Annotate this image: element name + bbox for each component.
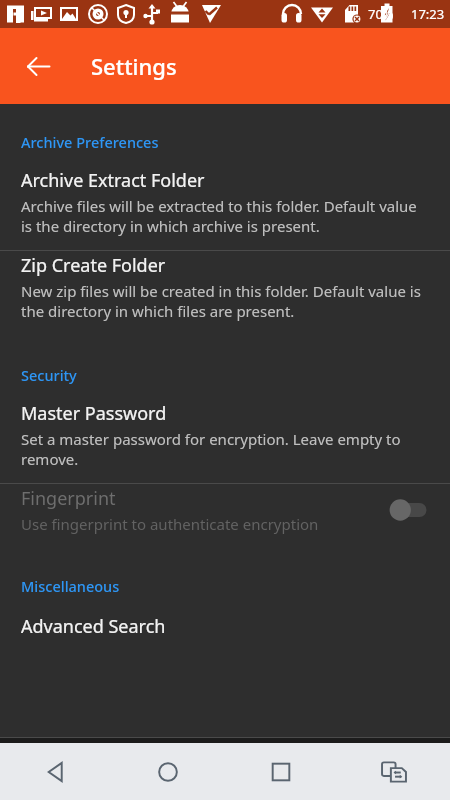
button[interactable]: Rotate screen bbox=[337, 743, 450, 800]
button[interactable]: Fingerprint toggle bbox=[386, 496, 432, 524]
staticText: Archive files will be extracted to this … bbox=[21, 196, 426, 236]
staticText: Settings bbox=[91, 51, 177, 81]
staticText: Security bbox=[21, 365, 77, 385]
button[interactable]: Advanced Search bbox=[0, 612, 450, 653]
staticText: 17:23 bbox=[411, 5, 445, 23]
button[interactable]: Recents bbox=[224, 743, 337, 800]
staticText: Zip Create Folder bbox=[21, 253, 166, 278]
button[interactable]: Master Password bbox=[0, 399, 450, 483]
staticText: Archive Preferences bbox=[21, 132, 159, 152]
button[interactable]: Zip Create Folder bbox=[0, 251, 450, 335]
staticText: Use fingerprint to authenticate encrypti… bbox=[21, 514, 319, 534]
staticText: Archive Extract Folder bbox=[21, 168, 205, 193]
button[interactable]: Back bbox=[0, 743, 112, 800]
staticText: Set a master password for encryption. Le… bbox=[21, 429, 426, 469]
staticText: 70% bbox=[368, 5, 394, 23]
button[interactable]: Back bbox=[14, 42, 62, 90]
staticText: Advanced Search bbox=[21, 614, 166, 639]
staticText: Miscellaneous bbox=[21, 576, 120, 596]
button[interactable]: Fingerprint bbox=[0, 484, 450, 548]
staticText: New zip files will be created in this fo… bbox=[21, 281, 426, 321]
button[interactable]: Archive Extract Folder bbox=[0, 166, 450, 250]
staticText: Master Password bbox=[21, 401, 167, 426]
staticText: Fingerprint bbox=[21, 486, 116, 511]
button[interactable]: Home bbox=[112, 743, 224, 800]
